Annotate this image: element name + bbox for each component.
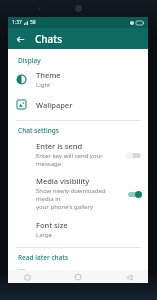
staticText: Read later chats [18, 253, 69, 262]
staticText: Chat settings [18, 126, 59, 135]
button[interactable]: Wallpaper [8, 96, 148, 113]
staticText: Theme [36, 70, 61, 80]
staticText: Font size [36, 220, 68, 230]
staticText: Show newly downloaded media in your phon… [36, 187, 122, 211]
staticText: Wallpaper [36, 100, 73, 110]
button[interactable]: Move chats with new me… [8, 266, 148, 270]
staticText: Large [36, 231, 53, 239]
staticText: 1:37 [12, 19, 22, 26]
button[interactable]: Back [124, 272, 134, 282]
staticText: Light [36, 81, 51, 89]
button[interactable]: Enter is send [8, 139, 148, 170]
button[interactable]: Recents [22, 272, 32, 282]
staticText: 58 [30, 19, 36, 26]
button[interactable]: Font size [8, 218, 148, 241]
staticText: Media visibility [36, 176, 90, 186]
staticText: Display [18, 56, 41, 65]
button[interactable]: Toggle off [126, 150, 142, 160]
staticText: Enter is send [36, 141, 83, 151]
button[interactable]: Back [12, 31, 28, 47]
staticText: Chats [35, 32, 63, 46]
button[interactable]: Home [73, 272, 83, 282]
staticText: Enter key will send your message [36, 152, 122, 168]
button[interactable]: Media visibility [8, 174, 148, 213]
button[interactable]: Theme [8, 68, 148, 91]
button[interactable]: Toggle on [126, 189, 142, 199]
